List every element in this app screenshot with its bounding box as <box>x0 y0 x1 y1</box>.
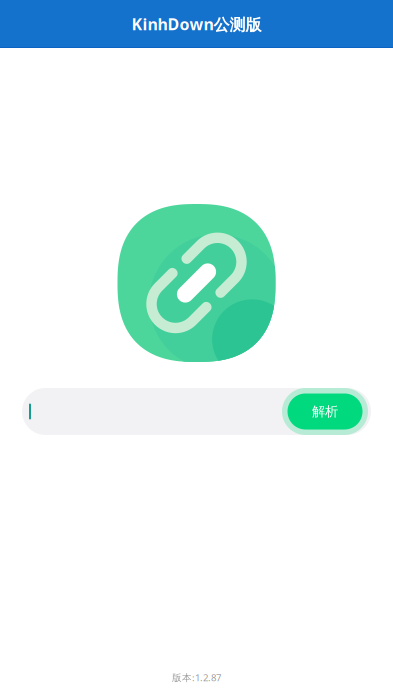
staticText: KinhDown公测版 <box>131 13 261 35</box>
staticText: 版本:1.2.87 <box>172 671 221 684</box>
staticText: 解析 <box>312 403 338 420</box>
button[interactable]: 解析 <box>282 388 368 435</box>
